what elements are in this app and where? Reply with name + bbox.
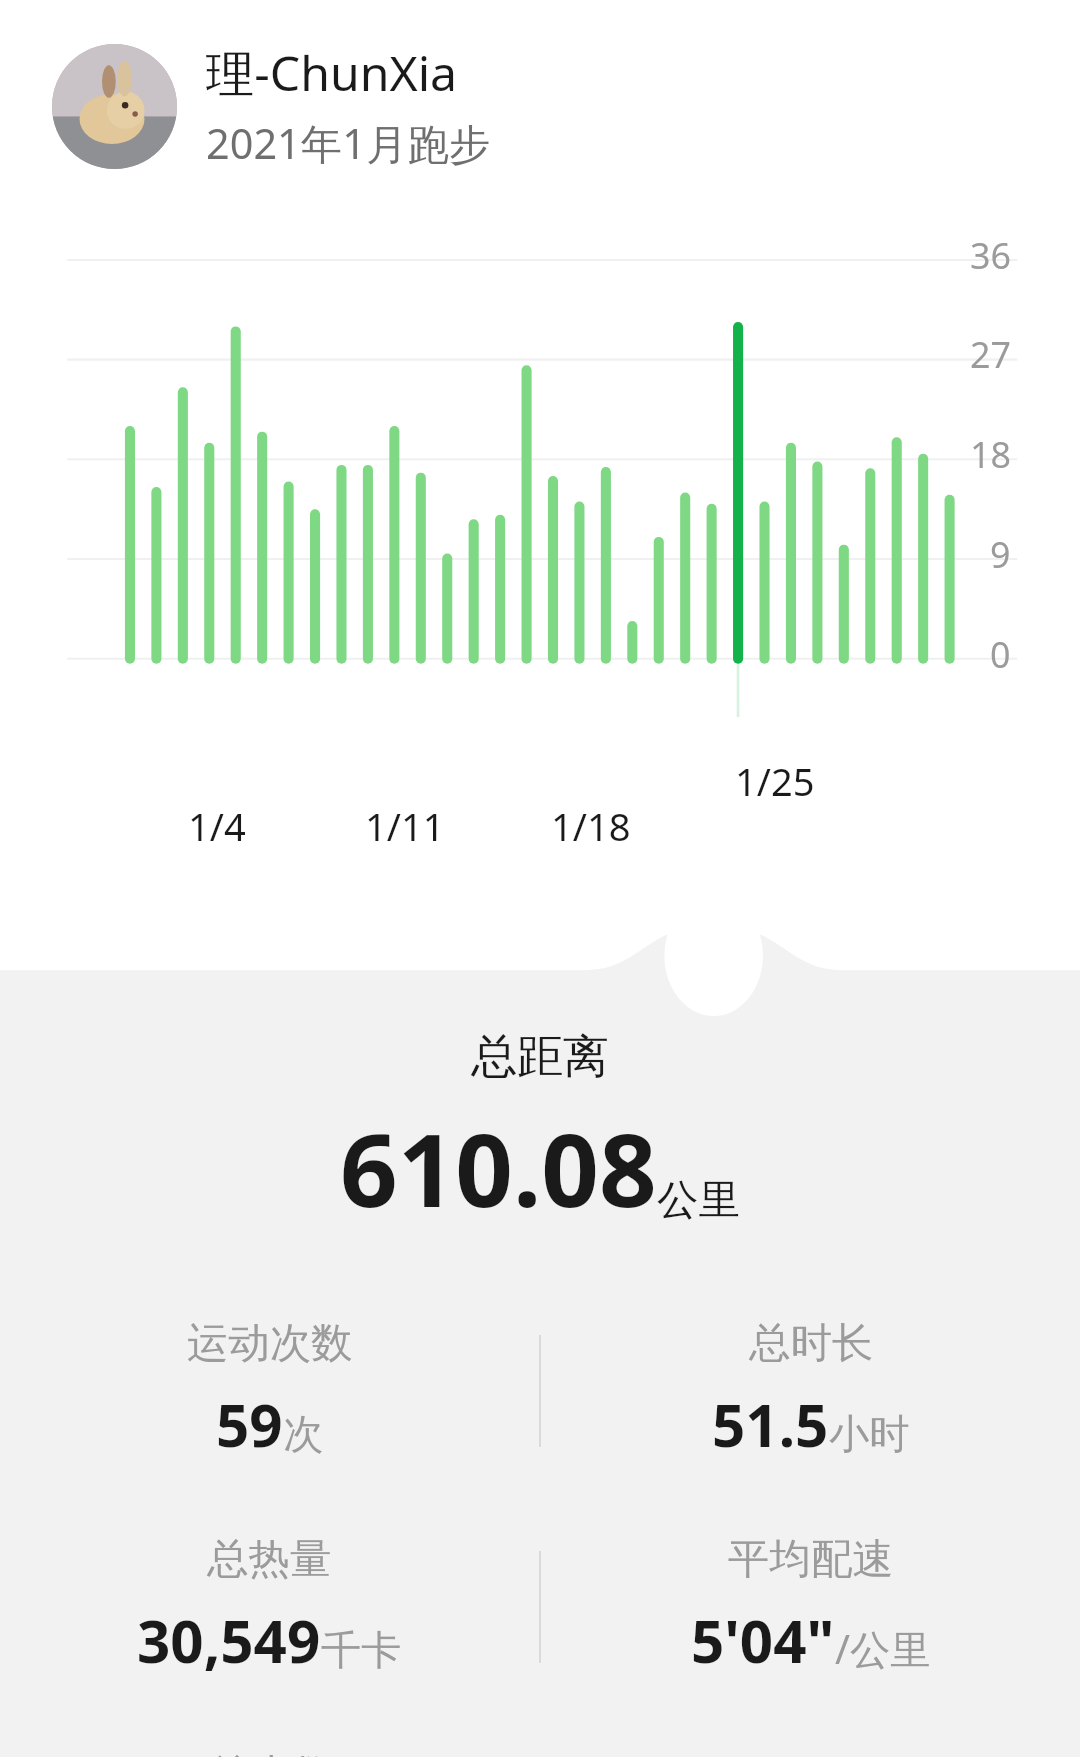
staticText: 27 (970, 330, 1012, 379)
staticText: 0 (990, 630, 1011, 679)
staticText: 1/25 (735, 755, 815, 807)
button[interactable]: 运动次数 (187, 1317, 353, 1464)
staticText: 610.08 (340, 1099, 657, 1236)
button[interactable]: 总时长 (712, 1317, 910, 1464)
button[interactable]: 平均配速 (691, 1533, 931, 1680)
staticText: 理-ChunXia (206, 40, 458, 106)
staticText: 9 (990, 530, 1011, 579)
staticText: 总步数 (208, 1749, 333, 1757)
staticText: 18 (970, 430, 1012, 479)
button[interactable]: Profile photo (52, 44, 177, 169)
staticText: 2021年1月跑步 (206, 115, 491, 172)
staticText: 1/4 (188, 800, 246, 852)
staticText: 小时 (829, 1409, 910, 1460)
staticText: 千卡 (321, 1625, 402, 1676)
staticText: 51.5 (712, 1385, 829, 1464)
staticText: 平均配速 (728, 1533, 894, 1585)
button[interactable]: 总步数 (155, 1749, 386, 1757)
staticText: 59 (216, 1385, 283, 1464)
staticText: 次 (283, 1409, 324, 1460)
staticText: 1/18 (551, 800, 631, 852)
staticText: 总距离 (471, 1028, 609, 1086)
button[interactable]: 总热量 (137, 1533, 402, 1680)
button[interactable]: Profile photo (52, 40, 491, 172)
staticText: 总热量 (207, 1533, 332, 1585)
staticText: /公里 (835, 1621, 931, 1676)
staticText: 30,549 (137, 1601, 321, 1680)
staticText: 1/11 (365, 800, 445, 852)
staticText: 36 (970, 231, 1012, 280)
staticText: 5'04" (691, 1601, 835, 1680)
staticText: 公里 (657, 1174, 740, 1226)
staticText: 运动次数 (187, 1317, 353, 1369)
staticText: 总时长 (749, 1317, 874, 1369)
